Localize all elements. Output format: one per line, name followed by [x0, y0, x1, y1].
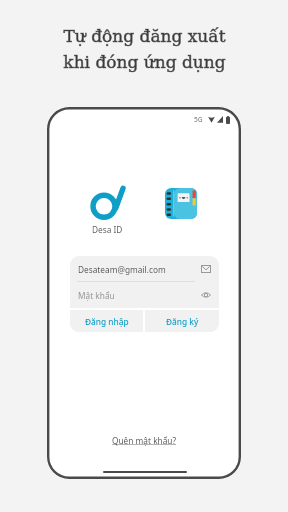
staticText: Desa ID [92, 224, 123, 235]
staticText: Đăng nhập [85, 316, 129, 327]
button[interactable]: Desa ID [88, 183, 132, 227]
staticText: Mật khẩu [78, 290, 115, 301]
button[interactable]: Đăng nhập [70, 310, 143, 332]
button[interactable]: Mật khẩu [70, 282, 219, 308]
other: Show password [201, 291, 211, 299]
staticText: Đăng ký [166, 316, 199, 327]
other: Email [201, 265, 211, 273]
staticText: 5G [194, 115, 203, 124]
button[interactable]: Đăng ký [145, 310, 219, 332]
button[interactable]: Notebook app [165, 188, 197, 219]
button[interactable]: Desateam@gmail.com [70, 256, 219, 282]
staticText: Desateam@gmail.com [78, 264, 166, 275]
staticText: khi đóng ứng dụng [63, 52, 226, 72]
button[interactable]: Quên mật khẩu? [107, 433, 182, 448]
staticText: Tự động đăng xuất [63, 26, 226, 46]
staticText: khi đóng ứng dụng [63, 52, 226, 72]
staticText: Tự động đăng xuất [63, 26, 226, 46]
staticText: Quên mật khẩu? [112, 435, 177, 446]
